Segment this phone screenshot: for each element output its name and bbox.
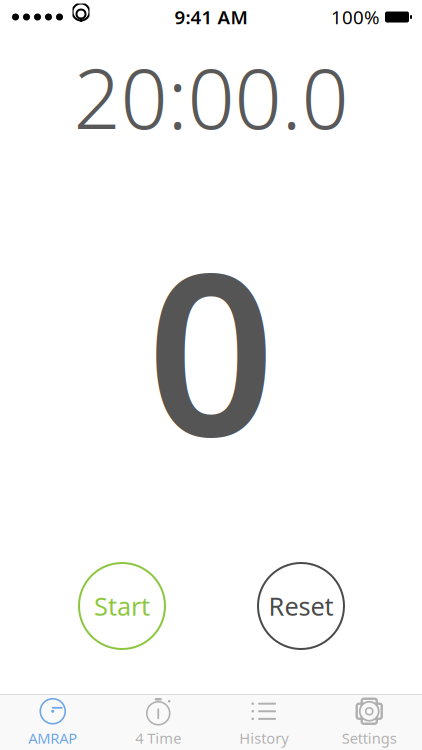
staticText: 0 <box>147 200 275 498</box>
button[interactable]: Settings <box>316 695 422 750</box>
button[interactable]: Reset <box>257 562 345 650</box>
staticText: Settings <box>342 728 397 748</box>
staticText: Reset <box>268 589 333 623</box>
staticText: History <box>239 728 288 748</box>
staticText: 4 Time <box>135 728 181 748</box>
staticText: 9:41 AM <box>174 5 247 29</box>
staticText: 20:00.0 <box>73 42 348 152</box>
staticText: Start <box>94 589 150 623</box>
button[interactable]: 4 Time <box>105 695 211 750</box>
button[interactable]: Start <box>78 562 166 650</box>
button[interactable]: History <box>211 695 316 750</box>
staticText: AMRAP <box>28 728 77 748</box>
button[interactable]: AMRAP <box>0 695 105 750</box>
staticText: 100% <box>331 5 380 29</box>
